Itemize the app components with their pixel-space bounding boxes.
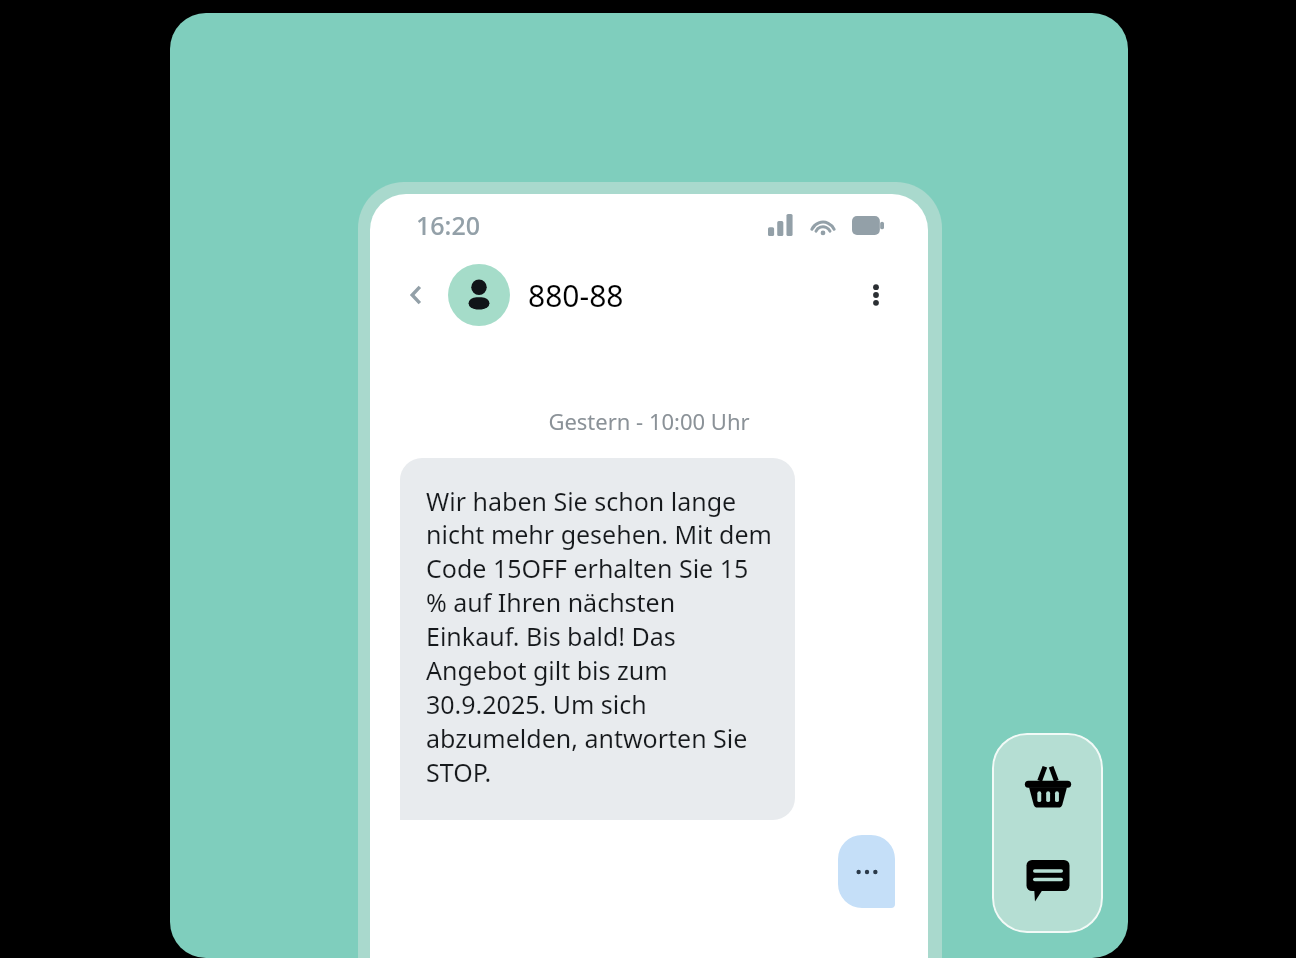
button[interactable]: More options xyxy=(854,273,898,317)
staticText: 16:20 xyxy=(416,208,481,242)
button[interactable]: Wir haben Sie schon lange nicht mehr ges… xyxy=(400,458,795,820)
button[interactable]: Back xyxy=(396,275,436,315)
staticText: Wir haben Sie schon lange nicht mehr ges… xyxy=(426,484,773,790)
button[interactable]: Shopping basket xyxy=(1012,750,1084,822)
button[interactable]: 880-88 xyxy=(448,264,624,326)
staticText: 880-88 xyxy=(528,275,624,316)
button[interactable]: Typing xyxy=(838,835,895,908)
button[interactable]: Messages xyxy=(1012,844,1084,916)
staticText: Gestern - 10:00 Uhr xyxy=(370,406,928,436)
